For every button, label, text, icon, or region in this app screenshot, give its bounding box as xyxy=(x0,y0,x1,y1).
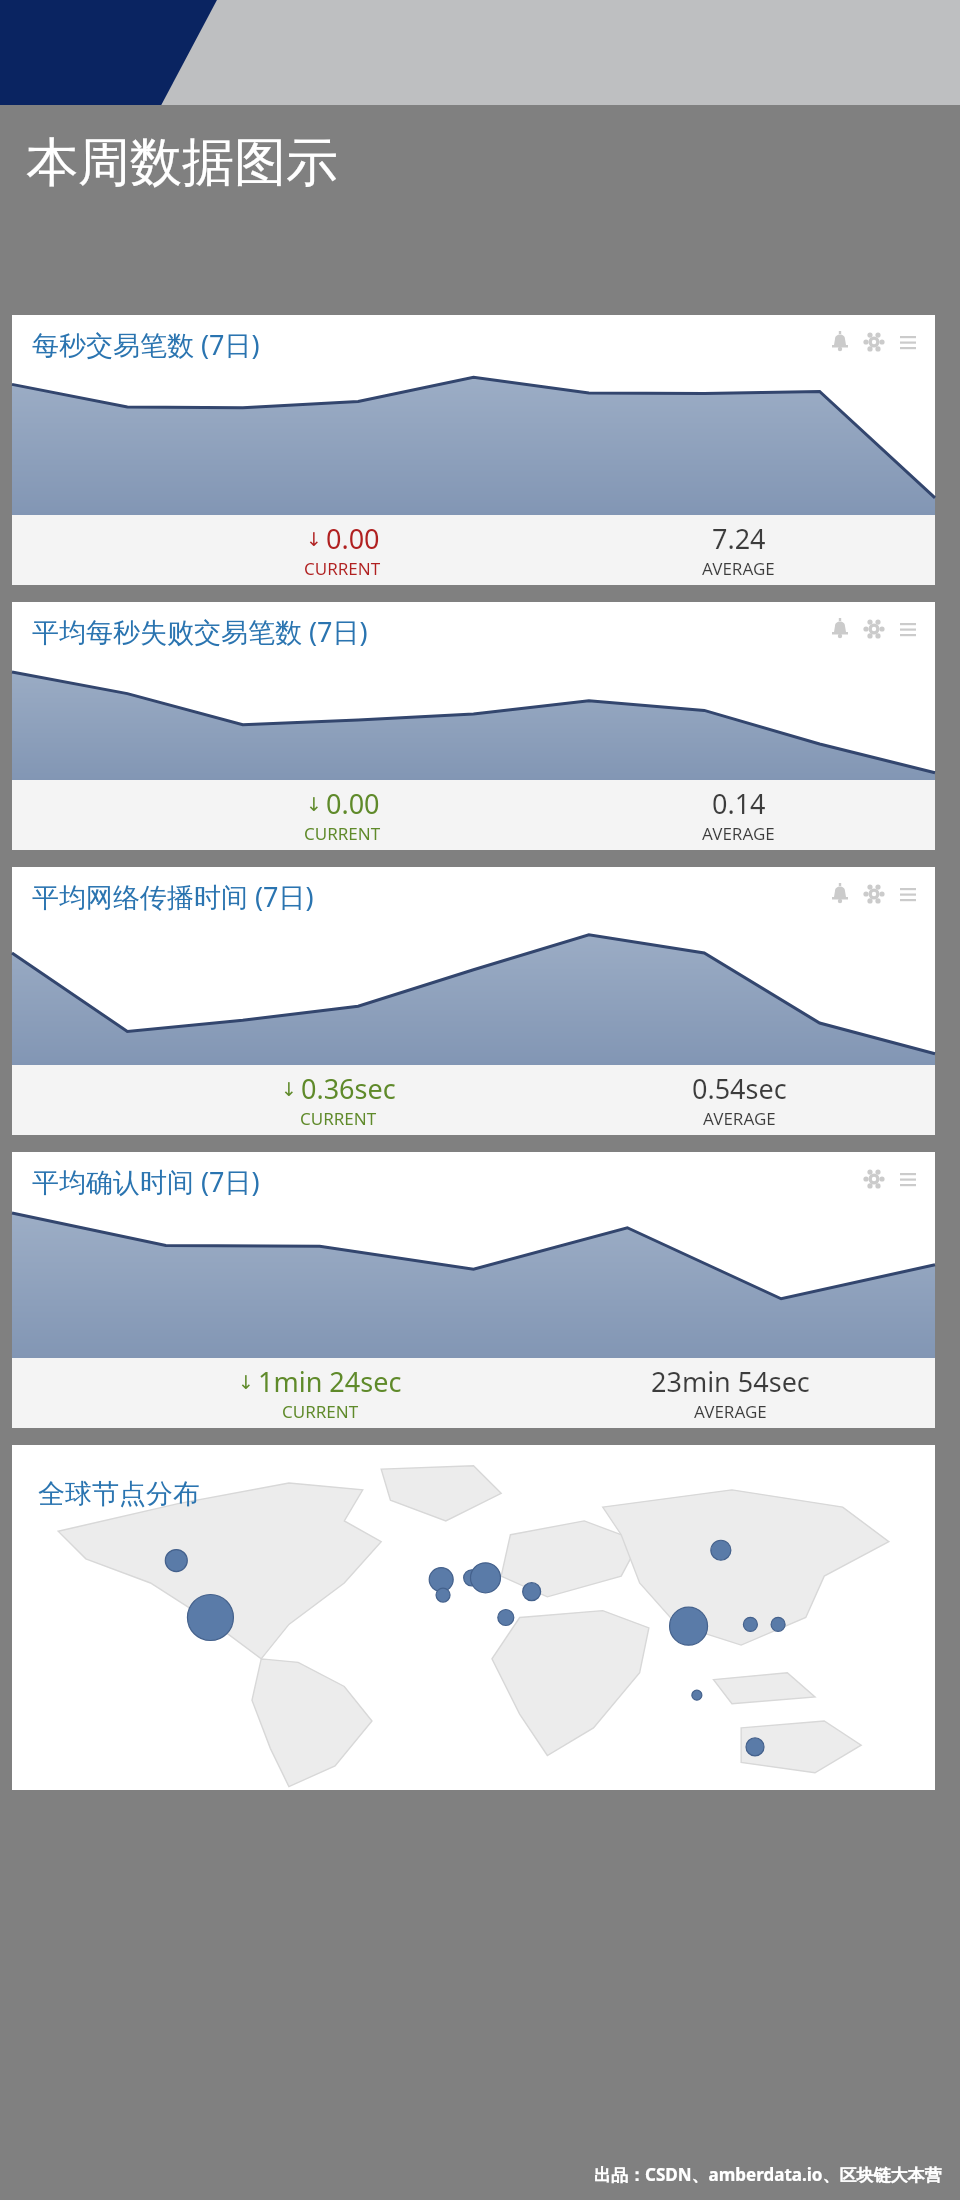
button[interactable]: 平均每秒失败交易笔数 (7日) xyxy=(12,602,935,850)
staticText: 出品：CSDN、amberdata.io、区块链大本营 xyxy=(594,2163,942,2186)
staticText: 全球节点分布 xyxy=(38,1477,200,1511)
staticText: CURRENT xyxy=(304,557,381,580)
staticText: ↓ xyxy=(306,528,322,550)
button[interactable]: Alerts xyxy=(827,329,853,355)
button[interactable]: Settings xyxy=(861,1166,887,1192)
button[interactable]: Settings xyxy=(861,329,887,355)
staticText: 本周数据图示 xyxy=(26,130,338,196)
staticText: 0.54sec xyxy=(692,1070,787,1107)
staticText: 平均每秒失败交易笔数 (7日) xyxy=(32,613,368,650)
button[interactable]: 全球节点分布 xyxy=(12,1445,935,1790)
button[interactable]: Alerts xyxy=(827,616,853,642)
staticText: 0.36sec xyxy=(301,1070,396,1107)
staticText: 23min 54sec xyxy=(651,1363,810,1400)
staticText: 每秒交易笔数 (7日) xyxy=(32,326,260,363)
staticText: 1min 24sec xyxy=(258,1363,402,1400)
button[interactable]: Menu xyxy=(895,1166,921,1192)
staticText: AVERAGE xyxy=(694,1400,767,1423)
button[interactable]: Menu xyxy=(895,329,921,355)
staticText: CURRENT xyxy=(282,1400,359,1423)
staticText: 0.00 xyxy=(326,785,380,822)
button[interactable]: Menu xyxy=(895,616,921,642)
button[interactable]: Settings xyxy=(861,616,887,642)
staticText: CURRENT xyxy=(300,1107,377,1130)
button[interactable]: Alerts xyxy=(827,881,853,907)
button[interactable]: Menu xyxy=(895,881,921,907)
button[interactable]: Settings xyxy=(861,881,887,907)
staticText: ↓ xyxy=(281,1078,297,1100)
staticText: 0.14 xyxy=(712,785,766,822)
staticText: 0.00 xyxy=(326,520,380,557)
button[interactable]: 平均网络传播时间 (7日) xyxy=(12,867,935,1135)
staticText: ↓ xyxy=(238,1371,254,1393)
staticText: 平均确认时间 (7日) xyxy=(32,1163,260,1200)
staticText: 平均网络传播时间 (7日) xyxy=(32,878,314,915)
staticText: 7.24 xyxy=(712,520,766,557)
staticText: AVERAGE xyxy=(703,1107,776,1130)
staticText: AVERAGE xyxy=(702,822,775,845)
staticText: CURRENT xyxy=(304,822,381,845)
button[interactable]: 每秒交易笔数 (7日) xyxy=(12,315,935,585)
staticText: ↓ xyxy=(306,793,322,815)
button[interactable]: 平均确认时间 (7日) xyxy=(12,1152,935,1428)
staticText: AVERAGE xyxy=(702,557,775,580)
